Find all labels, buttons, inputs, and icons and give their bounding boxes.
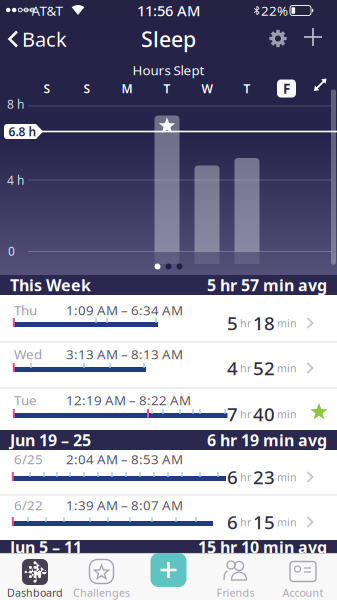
staticText: 11:56 AM bbox=[137, 1, 200, 20]
staticText: hr bbox=[240, 407, 251, 421]
staticText: Dashboard bbox=[7, 585, 63, 600]
staticText: min bbox=[277, 361, 297, 375]
staticText: 52 bbox=[253, 356, 275, 380]
staticText: S bbox=[83, 80, 90, 96]
staticText: min bbox=[277, 470, 297, 484]
staticText: 6 bbox=[227, 465, 238, 489]
staticText: 4 h bbox=[7, 172, 24, 188]
staticText: Jun 19 – 25 bbox=[10, 429, 91, 451]
staticText: 15 bbox=[253, 510, 275, 534]
staticText: F bbox=[283, 80, 290, 97]
staticText: 6.8 h bbox=[8, 123, 36, 139]
staticText: 23 bbox=[253, 465, 275, 489]
staticText: 3:13 AM – 8:13 AM bbox=[66, 345, 183, 363]
staticText: This Week bbox=[10, 274, 91, 296]
staticText: 5 hr 57 min avg bbox=[207, 274, 327, 296]
staticText: 22% bbox=[261, 2, 288, 19]
staticText: 12:19 AM – 8:22 AM bbox=[66, 391, 191, 409]
staticText: Hours Slept bbox=[132, 61, 204, 79]
staticText: 5 bbox=[227, 311, 238, 335]
staticText: M bbox=[121, 80, 132, 96]
staticText: S bbox=[43, 80, 50, 96]
staticText: T bbox=[163, 80, 170, 96]
staticText: Wed bbox=[14, 345, 42, 363]
staticText: T bbox=[243, 80, 250, 96]
staticText: Sleep bbox=[141, 25, 196, 53]
staticText: hr bbox=[240, 515, 251, 529]
staticText: 0 bbox=[8, 243, 15, 259]
staticText: 6 bbox=[227, 510, 238, 534]
staticText: Friends bbox=[216, 585, 254, 600]
staticText: min bbox=[277, 407, 297, 421]
staticText: Tue bbox=[14, 391, 37, 409]
staticText: 8 h bbox=[7, 96, 24, 112]
staticText: 18 bbox=[253, 311, 275, 335]
staticText: Back bbox=[22, 26, 67, 52]
staticText: hr bbox=[240, 316, 251, 330]
staticText: AT&T bbox=[31, 2, 62, 19]
staticText: hr bbox=[240, 361, 251, 375]
staticText: W bbox=[201, 80, 212, 96]
staticText: Challenges bbox=[73, 585, 130, 600]
staticText: 6/22 bbox=[14, 496, 43, 514]
staticText: 40 bbox=[253, 402, 275, 426]
staticText: 15 hr 10 min avg bbox=[198, 536, 327, 558]
staticText: Thu bbox=[14, 301, 37, 319]
staticText: 6 hr 19 min avg bbox=[207, 429, 327, 451]
staticText: 4 bbox=[227, 356, 238, 380]
staticText: min bbox=[277, 316, 297, 330]
staticText: 6/25 bbox=[14, 450, 43, 468]
staticText: 1:09 AM – 6:34 AM bbox=[66, 301, 183, 319]
staticText: Jun 5 – 11 bbox=[10, 536, 82, 558]
staticText: min bbox=[277, 515, 297, 529]
staticText: 1:39 AM – 8:07 AM bbox=[66, 496, 183, 514]
staticText: 2:04 AM – 8:53 AM bbox=[66, 450, 183, 468]
staticText: Account bbox=[282, 585, 323, 600]
staticText: hr bbox=[240, 470, 251, 484]
staticText: 7 bbox=[227, 402, 238, 426]
